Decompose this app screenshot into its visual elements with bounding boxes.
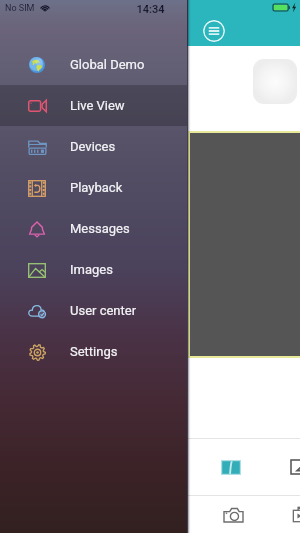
staticText: No SIM — [5, 3, 35, 14]
staticText: Images — [70, 262, 113, 277]
button[interactable]: Playback — [0, 167, 187, 208]
button[interactable]: Settings — [0, 331, 187, 372]
staticText: Messages — [70, 221, 130, 236]
staticText: User center — [70, 303, 137, 318]
button[interactable]: User center — [0, 290, 187, 331]
staticText: Live View — [70, 98, 125, 113]
button[interactable]: Snapshot — [202, 496, 264, 533]
staticText: 14:34 — [136, 3, 165, 16]
button[interactable]: Devices — [0, 126, 187, 167]
button[interactable]: Stream — [271, 439, 300, 495]
button[interactable]: Live View — [0, 85, 187, 126]
button[interactable]: Images — [0, 249, 187, 290]
staticText: Global Demo — [70, 57, 145, 72]
button[interactable]: Record — [270, 496, 300, 533]
staticText: Devices — [70, 139, 116, 154]
button[interactable]: Split view — [201, 439, 261, 495]
button[interactable]: Open navigation menu — [203, 20, 225, 42]
button[interactable]: Messages — [0, 208, 187, 249]
staticText: Settings — [70, 344, 118, 359]
staticText: Playback — [70, 180, 123, 195]
button[interactable]: Global Demo — [0, 44, 187, 85]
